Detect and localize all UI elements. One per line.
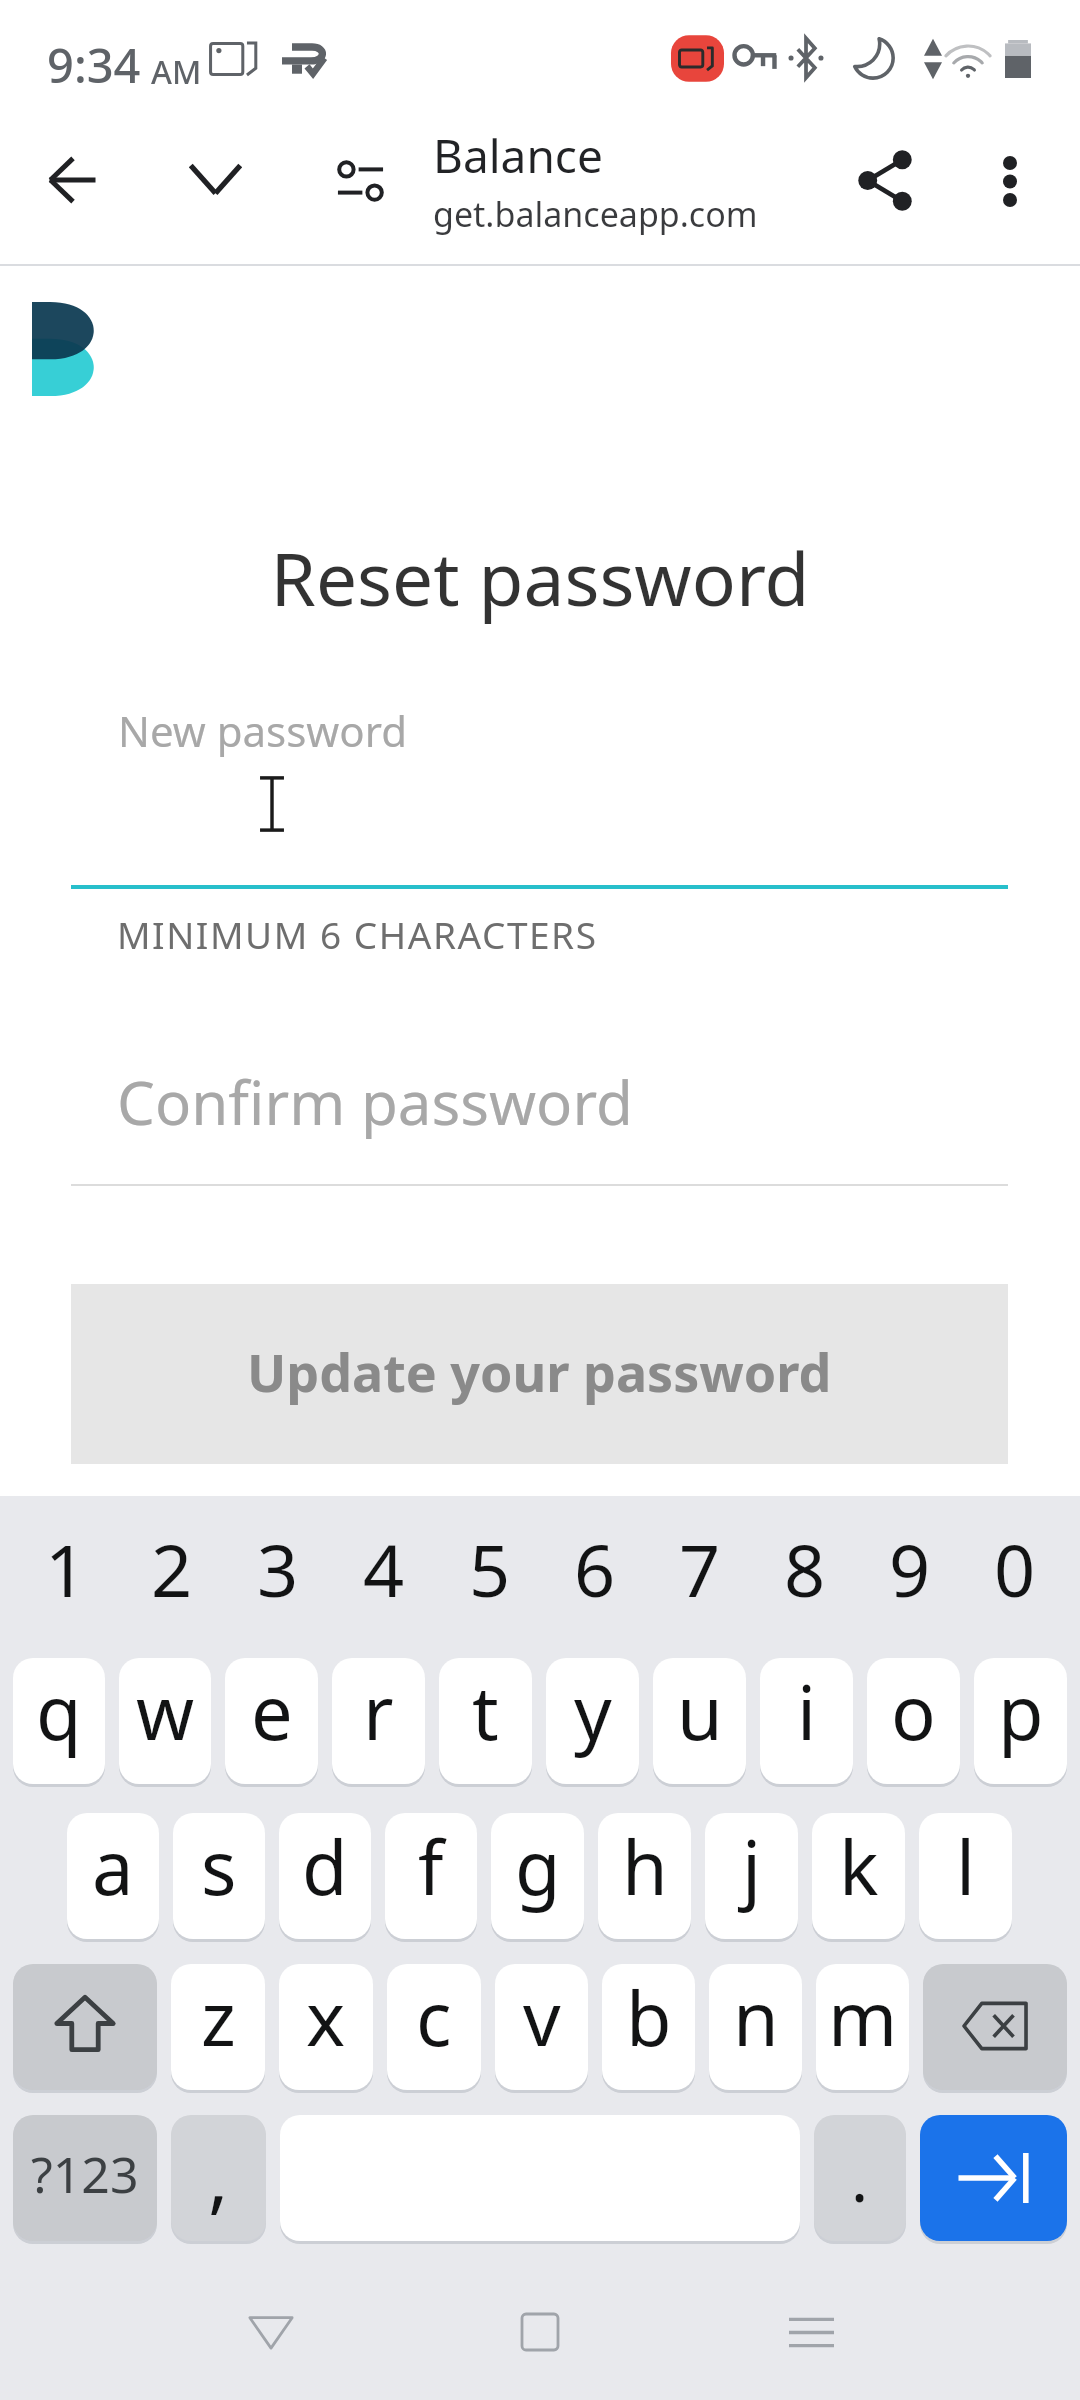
staticText: d (302, 1816, 348, 1917)
staticText: i (797, 1661, 817, 1762)
button[interactable]: Page settings (300, 112, 420, 264)
staticText: t (472, 1661, 499, 1762)
button[interactable]: a (67, 1813, 159, 1939)
staticText: AM (151, 50, 202, 94)
staticText: m (828, 1967, 898, 2068)
button[interactable]: Next (920, 2115, 1067, 2241)
staticText: 2 (151, 1520, 193, 1618)
button[interactable]: Backspace (923, 1964, 1067, 2090)
button[interactable]: l (919, 1813, 1012, 1939)
staticText: ?123 (31, 2140, 139, 2208)
button[interactable]: i (760, 1658, 853, 1784)
staticText: o (891, 1661, 936, 1762)
button[interactable]: . (814, 2115, 906, 2241)
button[interactable]: 4 (331, 1494, 437, 1644)
staticText: y (574, 1661, 612, 1762)
staticText: b (626, 1967, 672, 2068)
button[interactable]: e (225, 1658, 318, 1784)
button[interactable]: o (867, 1658, 960, 1784)
button[interactable]: j (705, 1813, 798, 1939)
staticText: z (201, 1967, 236, 2068)
button[interactable]: r (332, 1658, 425, 1784)
staticText: 7 (679, 1520, 721, 1618)
button[interactable]: Back (12, 112, 132, 264)
button[interactable]: 8 (752, 1494, 857, 1644)
staticText: 1 (45, 1520, 87, 1618)
staticText: g (515, 1816, 561, 1917)
staticText: Update your password (247, 1336, 832, 1407)
button[interactable]: y (546, 1658, 639, 1784)
button[interactable]: g (491, 1813, 584, 1939)
button[interactable]: Update your password (71, 1284, 1008, 1464)
button[interactable]: z (171, 1964, 265, 2090)
button[interactable]: k (812, 1813, 905, 1939)
button[interactable]: v (495, 1964, 588, 2090)
staticText: Balance (433, 124, 603, 187)
staticText: 8 (784, 1520, 826, 1618)
button[interactable]: c (387, 1964, 481, 2090)
button[interactable]: s (173, 1813, 265, 1939)
button[interactable]: Home (485, 2277, 595, 2387)
staticText: s (201, 1816, 237, 1917)
staticText: w (136, 1661, 195, 1762)
staticText: 9 (889, 1520, 931, 1618)
staticText: Reset password (0, 528, 1080, 627)
button[interactable]: Share (822, 112, 947, 264)
staticText: j (742, 1816, 762, 1917)
staticText: r (363, 1661, 394, 1762)
staticText: 9:34 (47, 33, 141, 97)
staticText: , (208, 2124, 229, 2228)
button[interactable]: More options (947, 112, 1072, 264)
button[interactable]: ?123 (13, 2115, 157, 2241)
staticText: n (733, 1967, 779, 2068)
button[interactable]: h (598, 1813, 691, 1939)
button[interactable]: p (974, 1658, 1067, 1784)
button[interactable]: Collapse (155, 112, 275, 264)
staticText: New password (118, 702, 408, 759)
staticText: x (306, 1967, 346, 2068)
button[interactable]: , (171, 2115, 266, 2241)
staticText: v (523, 1967, 561, 2068)
staticText: u (677, 1661, 723, 1762)
staticText: f (418, 1816, 444, 1917)
staticText: . (851, 2134, 869, 2221)
staticText: p (998, 1661, 1044, 1762)
staticText: e (251, 1661, 293, 1762)
staticText: q (36, 1661, 82, 1762)
staticText: Confirm password (117, 1061, 633, 1143)
staticText: l (956, 1816, 976, 1917)
button[interactable]: d (279, 1813, 371, 1939)
staticText: a (92, 1816, 134, 1917)
button[interactable]: 5 (437, 1494, 542, 1644)
button[interactable]: 6 (542, 1494, 647, 1644)
staticText: k (839, 1816, 879, 1917)
button[interactable]: Recent apps (756, 2277, 866, 2387)
button[interactable]: m (816, 1964, 909, 2090)
staticText: h (622, 1816, 668, 1917)
button[interactable]: 2 (119, 1494, 225, 1644)
staticText: c (416, 1967, 452, 2068)
button[interactable]: 1 (13, 1494, 119, 1644)
staticText: get.balanceapp.com (433, 191, 758, 237)
staticText: MINIMUM 6 CHARACTERS (117, 909, 598, 959)
button[interactable]: 9 (857, 1494, 962, 1644)
button[interactable]: u (653, 1658, 746, 1784)
button[interactable]: 7 (647, 1494, 752, 1644)
staticText: 0 (994, 1520, 1036, 1618)
button[interactable]: n (709, 1964, 802, 2090)
button[interactable]: t (439, 1658, 532, 1784)
staticText: 6 (574, 1520, 616, 1618)
button[interactable]: x (279, 1964, 373, 2090)
button[interactable]: 0 (962, 1494, 1067, 1644)
button[interactable]: 3 (225, 1494, 331, 1644)
staticText: 4 (363, 1520, 405, 1618)
button[interactable]: Back (216, 2277, 326, 2387)
button[interactable]: w (119, 1658, 211, 1784)
button[interactable]: q (13, 1658, 105, 1784)
button[interactable]: Shift (13, 1964, 157, 2090)
button[interactable]: f (385, 1813, 477, 1939)
staticText: 5 (469, 1520, 511, 1618)
staticText: 3 (257, 1520, 299, 1618)
button[interactable]: b (602, 1964, 695, 2090)
